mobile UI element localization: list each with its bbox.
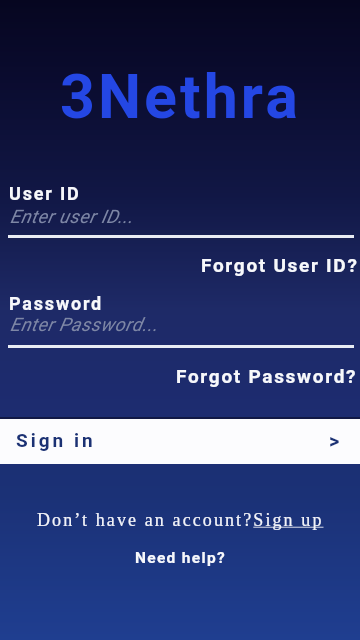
button[interactable]: Forgot Password? <box>176 365 358 387</box>
staticText: Sign in <box>16 429 96 451</box>
button[interactable]: Need help? <box>135 549 226 567</box>
button[interactable]: Enter Password... <box>10 314 159 336</box>
button[interactable]: Forgot User ID? <box>201 254 359 276</box>
staticText: > <box>329 429 340 452</box>
button[interactable]: Don’t have an account?Sign up <box>37 510 324 530</box>
staticText: User ID <box>9 183 81 204</box>
staticText: Password <box>9 293 104 314</box>
staticText: 3Nethra <box>60 61 301 132</box>
button[interactable]: Enter user ID... <box>10 206 134 228</box>
button[interactable]: Sign in <box>0 419 360 464</box>
